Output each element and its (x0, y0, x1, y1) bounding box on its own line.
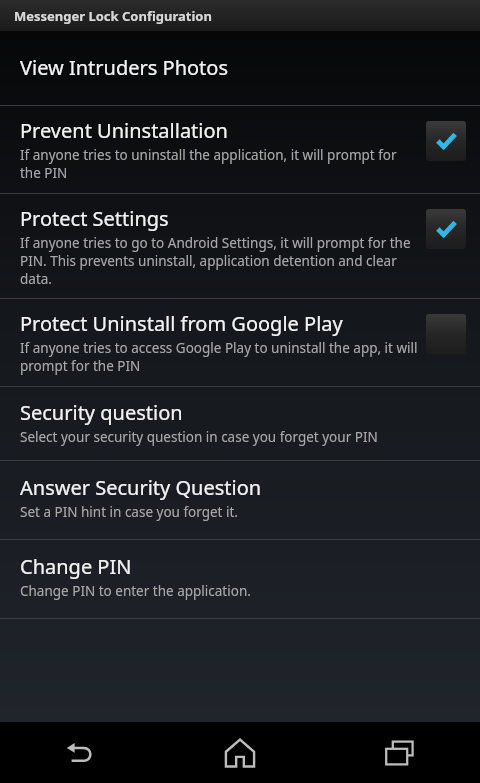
staticText: If anyone tries to go to Android Setting… (20, 234, 418, 288)
staticText: Protect Uninstall from Google Play (20, 310, 343, 337)
button[interactable]: Protect Uninstall from Google Play (0, 299, 480, 386)
button[interactable]: Checked (426, 121, 466, 161)
button[interactable]: Back (0, 722, 160, 783)
staticText: Answer Security Question (20, 474, 262, 501)
staticText: Security question (20, 399, 183, 426)
button[interactable]: Home (160, 722, 320, 783)
button[interactable]: Recent apps (320, 722, 480, 783)
button[interactable]: Protect Settings (0, 194, 480, 298)
button[interactable]: Checked (426, 209, 466, 249)
staticText: View Intruders Photos (20, 54, 229, 81)
staticText: Change PIN to enter the application. (20, 582, 251, 600)
staticText: If anyone tries to uninstall the applica… (20, 146, 418, 182)
staticText: Protect Settings (20, 205, 169, 232)
staticText: Set a PIN hint in case you forget it. (20, 503, 238, 521)
staticText: If anyone tries to access Google Play to… (20, 339, 418, 375)
staticText: Prevent Uninstallation (20, 117, 228, 144)
button[interactable]: Answer Security Question (0, 461, 480, 539)
button[interactable]: Unchecked (426, 314, 466, 354)
staticText: Select your security question in case yo… (20, 428, 378, 446)
staticText: Messenger Lock Configuration (14, 7, 212, 25)
button[interactable]: Prevent Uninstallation (0, 106, 480, 193)
button[interactable]: Security question (0, 387, 480, 460)
staticText: Change PIN (20, 553, 132, 580)
button[interactable]: Change PIN (0, 540, 480, 618)
button[interactable]: View Intruders Photos (0, 32, 480, 105)
